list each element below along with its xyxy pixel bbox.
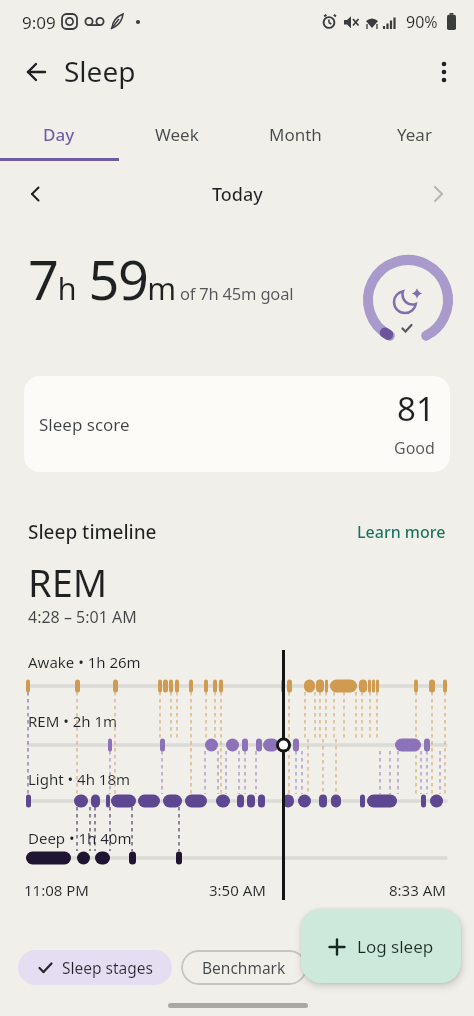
staticText: Awake • 1h 26m (28, 652, 141, 672)
button[interactable]: Year (355, 108, 474, 160)
staticText: Year (397, 123, 432, 146)
button[interactable]: Sleep stages (18, 950, 172, 985)
staticText: REM • 2h 1m (28, 711, 118, 731)
staticText: Good (394, 437, 435, 459)
staticText: Log sleep (357, 935, 434, 958)
staticText: 90% (406, 11, 438, 33)
staticText: 4:28 – 5:01 AM (28, 606, 137, 628)
staticText: Deep • 1h 40m (28, 828, 132, 848)
staticText: Week (155, 123, 199, 146)
staticText: Day (43, 123, 75, 146)
staticText: 8:33 AM (389, 880, 446, 900)
button[interactable]: Learn more (330, 518, 446, 546)
button[interactable]: Benchmark (181, 950, 307, 985)
staticText: Sleep timeline (28, 519, 157, 545)
staticText: 11:08 PM (24, 880, 89, 900)
button[interactable] (16, 52, 56, 92)
staticText: Sleep stages (62, 957, 153, 978)
staticText: REM (28, 556, 108, 604)
button[interactable] (424, 52, 464, 92)
staticText: Benchmark (202, 957, 286, 978)
staticText: 9:09 (22, 11, 56, 34)
staticText: 3:50 AM (209, 880, 266, 900)
staticText: Sleep score (39, 413, 130, 436)
button[interactable] (416, 172, 460, 216)
staticText: Light • 4h 18m (28, 769, 131, 789)
staticText: Sleep (64, 52, 136, 90)
button[interactable]: Today (157, 172, 317, 216)
staticText: Today (212, 182, 263, 207)
staticText: 81 (397, 386, 435, 431)
button[interactable]: Week (118, 108, 236, 160)
button[interactable] (14, 172, 58, 216)
button[interactable]: Month (236, 108, 355, 160)
button[interactable]: Day (0, 108, 118, 160)
staticText: Learn more (357, 521, 446, 543)
staticText: Month (269, 123, 322, 146)
button[interactable]: Log sleep (301, 909, 461, 983)
staticText: 7h 59m of 7h 45m goal (28, 242, 294, 316)
button[interactable]: Sleep score (24, 376, 450, 472)
